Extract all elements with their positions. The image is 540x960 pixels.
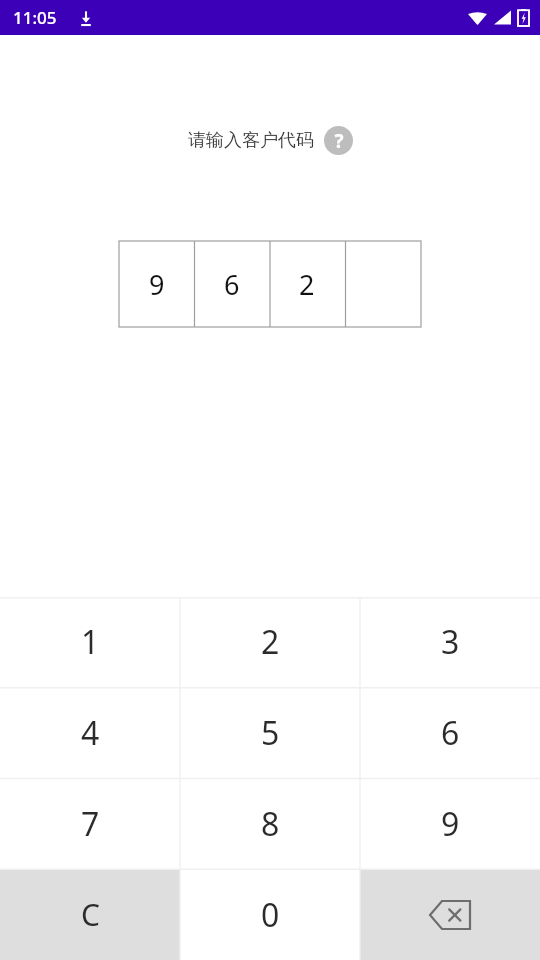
button[interactable]: 2 bbox=[269, 241, 345, 327]
button[interactable]: Backspace bbox=[360, 869, 540, 960]
staticText: 4 bbox=[81, 711, 100, 755]
staticText: 6 bbox=[441, 711, 460, 755]
button[interactable]: 9 bbox=[119, 241, 194, 327]
staticText: 1 bbox=[81, 620, 100, 664]
button[interactable]: 6 bbox=[360, 687, 540, 778]
staticText: 2 bbox=[299, 266, 315, 303]
button[interactable]: 9 bbox=[360, 778, 540, 869]
button[interactable]: 0 bbox=[180, 869, 360, 960]
staticText: 6 bbox=[224, 266, 240, 303]
staticText: 7 bbox=[81, 802, 100, 846]
button[interactable]: 6 bbox=[194, 241, 269, 327]
button[interactable]: Help bbox=[324, 126, 353, 155]
button[interactable]: 8 bbox=[180, 778, 360, 869]
staticText: 0 bbox=[261, 893, 280, 937]
staticText: ? bbox=[334, 128, 344, 154]
button[interactable]: 3 bbox=[360, 597, 540, 687]
button[interactable]: 7 bbox=[0, 778, 180, 869]
staticText: C bbox=[81, 894, 100, 935]
staticText: 9 bbox=[441, 802, 460, 846]
staticText: 5 bbox=[261, 711, 280, 755]
staticText: 3 bbox=[441, 620, 460, 664]
staticText: 8 bbox=[261, 802, 280, 846]
staticText: 请输入客户代码 bbox=[188, 129, 314, 152]
staticText: 2 bbox=[261, 620, 280, 664]
button[interactable]: 1 bbox=[0, 597, 180, 687]
button[interactable]: C bbox=[0, 869, 180, 960]
button[interactable]: 4 bbox=[0, 687, 180, 778]
button[interactable]: 2 bbox=[180, 597, 360, 687]
staticText: 9 bbox=[149, 266, 165, 303]
staticText: 11:05 bbox=[13, 6, 57, 29]
button[interactable]: 5 bbox=[180, 687, 360, 778]
button[interactable] bbox=[345, 241, 421, 327]
